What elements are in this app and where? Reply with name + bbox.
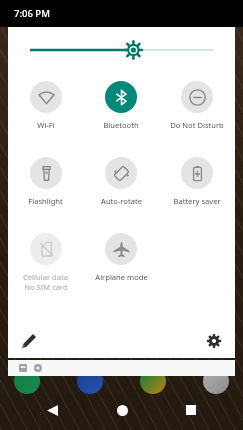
- button[interactable]: Edit tiles: [16, 328, 42, 354]
- staticText: Wi-Fi: [37, 120, 55, 130]
- staticText: Do Not Disturb: [170, 120, 224, 130]
- staticText: Bluetooth: [103, 120, 139, 130]
- staticText: Airplane mode: [95, 272, 148, 282]
- staticText: Flashlight: [28, 196, 63, 206]
- button[interactable]: [8, 27, 235, 73]
- button[interactable]: Flashlight: [8, 149, 83, 225]
- staticText: Battery saver: [173, 196, 221, 206]
- staticText: 7:06 PM: [14, 7, 50, 20]
- button[interactable]: Airplane mode: [83, 225, 159, 301]
- staticText: No SIM card: [24, 282, 68, 292]
- button[interactable]: Wi-Fi: [8, 73, 83, 149]
- button[interactable]: Settings: [201, 328, 227, 354]
- staticText: Auto-rotate: [101, 196, 142, 206]
- button[interactable]: Recents: [174, 393, 208, 427]
- button[interactable]: Bluetooth: [83, 73, 159, 149]
- staticText: Cellular data: [23, 272, 68, 282]
- button[interactable]: Cellular data: [8, 225, 83, 301]
- button[interactable]: Auto-rotate: [83, 149, 159, 225]
- button[interactable]: Back: [35, 393, 69, 427]
- button[interactable]: Do Not Disturb: [159, 73, 235, 149]
- button[interactable]: [8, 360, 235, 376]
- button[interactable]: Battery saver: [159, 149, 235, 225]
- button[interactable]: Home: [105, 393, 139, 427]
